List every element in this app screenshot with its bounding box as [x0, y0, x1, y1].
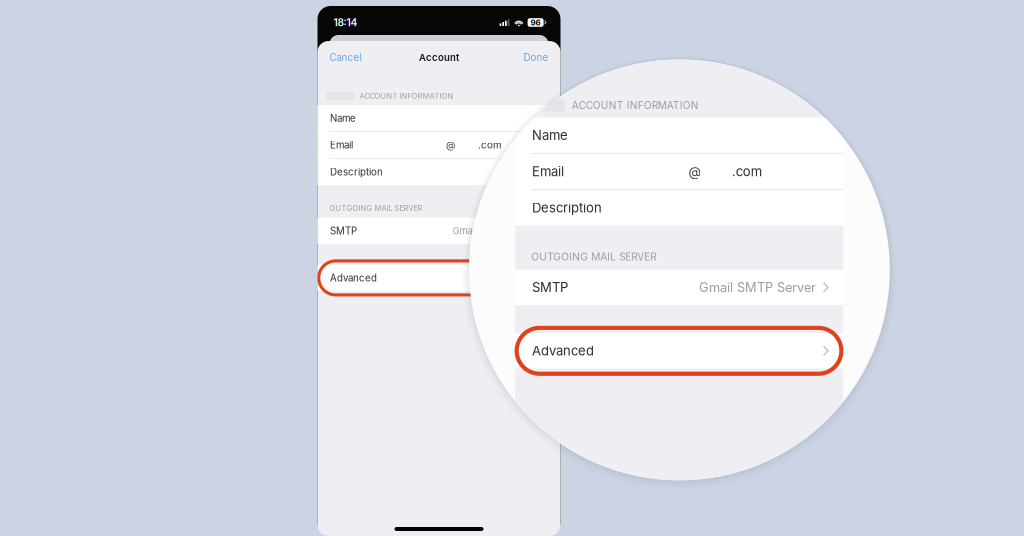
staticText: Description [532, 200, 602, 216]
staticText: Gmail SMTP Server [452, 225, 540, 237]
staticText: Email [532, 164, 564, 179]
button[interactable]: SMTP [317, 218, 560, 244]
button[interactable]: Done [513, 46, 548, 69]
staticText: 18:14 [333, 16, 357, 29]
staticText: Account [419, 52, 459, 63]
staticText: Description [330, 166, 383, 178]
staticText: Name [532, 127, 568, 143]
staticText: Advanced [532, 343, 594, 359]
staticText: ACCOUNT INFORMATION [359, 92, 453, 101]
button[interactable]: Description [317, 159, 560, 185]
staticText: Cancel [329, 52, 361, 63]
staticText: Account [653, 45, 705, 61]
staticText: Name [330, 112, 356, 124]
button[interactable]: Cancel [329, 46, 371, 69]
button[interactable]: SMTP [515, 270, 843, 305]
button[interactable]: Advanced [515, 333, 843, 368]
staticText: ACCOUNT INFORMATION [572, 99, 699, 111]
staticText: .com [478, 139, 501, 151]
staticText: @ [688, 164, 701, 179]
staticText: SMTP [330, 225, 357, 237]
staticText: 96 [531, 18, 541, 27]
staticText: Advanced [330, 272, 377, 284]
button[interactable]: Name [317, 105, 560, 131]
staticText: Gmail SMTP Server [699, 280, 816, 295]
button[interactable]: Name [515, 117, 843, 153]
staticText: OUTGOING MAIL SERVER [531, 251, 656, 263]
staticText: @ [446, 139, 455, 151]
staticText: Email [330, 139, 353, 151]
staticText: SMTP [532, 279, 568, 295]
button[interactable]: Cancel [531, 37, 589, 69]
staticText: Done [523, 52, 548, 63]
staticText: Cancel [531, 45, 575, 61]
button[interactable]: Advanced [317, 265, 560, 291]
staticText: OUTGOING MAIL SERVER [329, 204, 422, 213]
button[interactable]: Description [515, 190, 843, 226]
staticText: .com [732, 164, 762, 179]
